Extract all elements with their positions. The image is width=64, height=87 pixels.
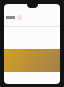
button[interactable]: [4, 13, 60, 21]
